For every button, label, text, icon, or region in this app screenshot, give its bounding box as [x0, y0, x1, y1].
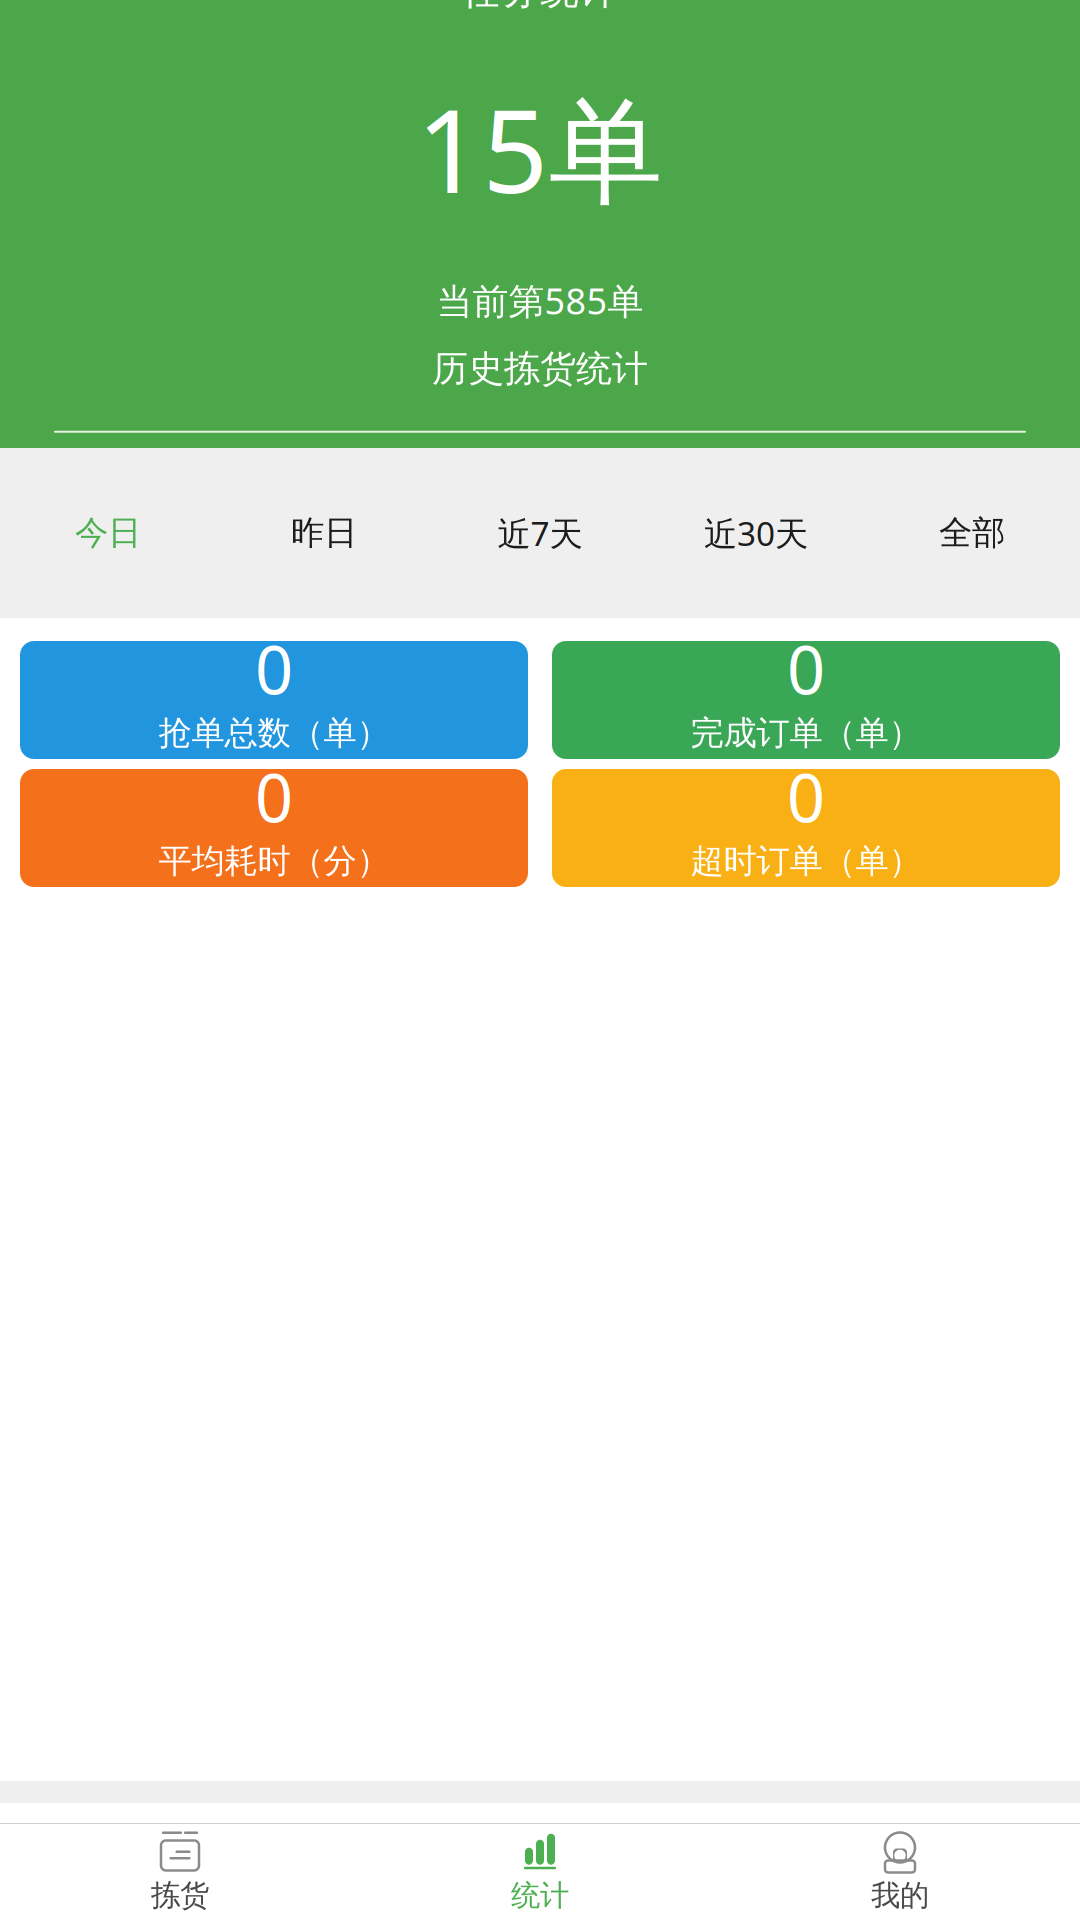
- staticText: 近7天: [497, 511, 582, 555]
- button[interactable]: 0: [20, 769, 528, 887]
- staticText: 0: [787, 752, 825, 841]
- staticText: 0: [255, 624, 293, 713]
- staticText: 今日: [75, 512, 141, 553]
- staticText: 完成订单（单）: [690, 713, 921, 754]
- button[interactable]: 统计: [360, 1824, 720, 1920]
- staticText: 超时订单（单）: [690, 841, 921, 882]
- button[interactable]: 近30天: [648, 448, 864, 618]
- button[interactable]: 昨日: [216, 448, 432, 618]
- button[interactable]: 全部: [864, 448, 1080, 618]
- staticText: 0: [787, 624, 825, 713]
- staticText: 任务统计: [462, 0, 618, 14]
- button[interactable]: 拣货: [0, 1824, 360, 1920]
- staticText: 抢单总数（单）: [158, 713, 389, 754]
- staticText: 15单: [416, 72, 663, 225]
- staticText: 平均耗时（分）: [158, 841, 389, 882]
- staticText: 0: [255, 752, 293, 841]
- staticText: 历史拣货统计: [432, 346, 648, 391]
- button[interactable]: 我的: [720, 1824, 1080, 1920]
- staticText: 昨日: [291, 512, 357, 553]
- button[interactable]: 近7天: [432, 448, 648, 618]
- staticText: 我的: [871, 1877, 929, 1913]
- staticText: 统计: [511, 1877, 569, 1913]
- button[interactable]: 0: [552, 769, 1060, 887]
- button[interactable]: 今日: [0, 448, 216, 618]
- staticText: 当前第585单: [436, 277, 643, 324]
- staticText: 近30天: [704, 511, 808, 555]
- staticText: 全部: [939, 512, 1005, 553]
- staticText: 拣货: [151, 1877, 209, 1913]
- button[interactable]: 0: [552, 641, 1060, 759]
- button[interactable]: 0: [20, 641, 528, 759]
